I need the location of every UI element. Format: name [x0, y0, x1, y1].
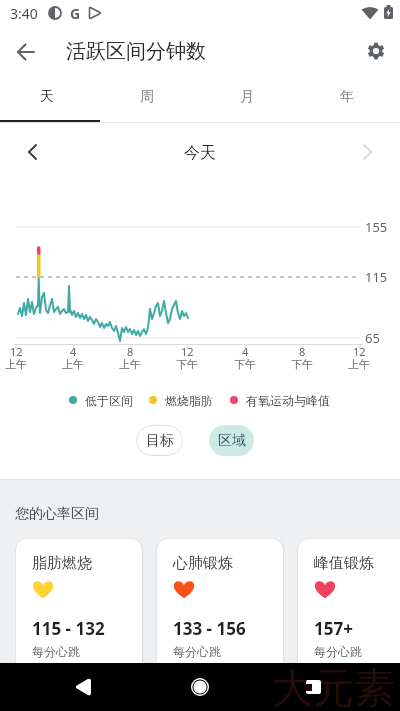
button[interactable]: 目标 — [136, 425, 183, 456]
button[interactable] — [358, 33, 394, 69]
staticText: 目标 — [146, 432, 174, 450]
staticText: 大元素 — [272, 663, 395, 711]
button[interactable]: 年 — [297, 78, 397, 116]
staticText: 每分心跳 — [314, 644, 362, 659]
button[interactable]: 天 — [0, 78, 97, 116]
staticText: 133 - 156 — [173, 617, 246, 640]
staticText: 115 - 132 — [32, 617, 105, 640]
staticText: 每分心跳 — [32, 644, 80, 659]
staticText: 燃烧脂肪 — [165, 393, 213, 408]
staticText: 3:40 — [10, 4, 38, 23]
staticText: 65 — [365, 329, 380, 347]
staticText: 月 — [240, 88, 254, 106]
staticText: 活跃区间分钟数 — [66, 39, 206, 64]
staticText: 4 — [242, 344, 249, 359]
staticText: 上午 — [62, 357, 84, 371]
staticText: 155 — [365, 218, 388, 236]
staticText: 峰值锻炼 — [314, 554, 374, 573]
button[interactable]: 脂肪燃烧 — [16, 539, 142, 704]
button[interactable]: 心肺锻炼 — [157, 539, 283, 704]
staticText: 今天 — [184, 143, 216, 163]
staticText: 上午 — [348, 357, 370, 371]
staticText: 周 — [140, 88, 154, 106]
button[interactable] — [288, 668, 338, 706]
staticText: 下午 — [176, 357, 198, 371]
button[interactable] — [14, 133, 52, 169]
staticText: 区域 — [218, 432, 246, 450]
staticText: 4 — [70, 344, 77, 359]
staticText: 115 — [365, 268, 388, 286]
staticText: 低于区间 — [85, 393, 133, 408]
button[interactable] — [348, 133, 386, 169]
staticText: 脂肪燃烧 — [32, 554, 92, 573]
button[interactable]: 峰值锻炼 — [298, 539, 400, 704]
staticText: 上午 — [5, 357, 27, 371]
staticText: 天 — [40, 88, 54, 106]
staticText: 您的心率区间 — [15, 505, 99, 523]
button[interactable]: 周 — [97, 78, 197, 116]
button[interactable] — [60, 668, 110, 706]
staticText: 8 — [127, 344, 134, 359]
staticText: 12 — [10, 344, 23, 359]
staticText: 157+ — [314, 617, 353, 640]
staticText: 心肺锻炼 — [173, 554, 233, 573]
button[interactable] — [8, 34, 44, 70]
button[interactable] — [175, 668, 225, 706]
staticText: 有氧运动与峰值 — [246, 393, 330, 408]
staticText: G — [70, 4, 81, 23]
staticText: 下午 — [291, 357, 313, 371]
staticText: 12 — [181, 344, 194, 359]
button[interactable]: 月 — [197, 78, 297, 116]
staticText: 每分心跳 — [173, 644, 221, 659]
staticText: 年 — [340, 88, 354, 106]
staticText: 下午 — [234, 357, 256, 371]
staticText: 上午 — [119, 357, 141, 371]
button[interactable]: 区域 — [209, 425, 254, 456]
staticText: 12 — [353, 344, 366, 359]
staticText: 8 — [299, 344, 306, 359]
